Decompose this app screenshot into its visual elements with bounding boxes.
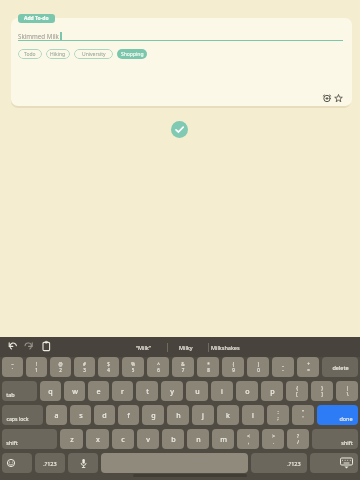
staticText: Shopping xyxy=(121,51,144,58)
staticText: ” ' xyxy=(302,409,304,421)
button[interactable]: ! 1 xyxy=(26,357,47,377)
button[interactable]: ~ ` xyxy=(2,357,23,377)
button[interactable]: : ; xyxy=(267,405,289,425)
button[interactable]: delete xyxy=(322,357,358,377)
button[interactable]: .?123 xyxy=(251,453,307,473)
button[interactable]: % 5 xyxy=(122,357,144,377)
staticText: * 8 xyxy=(207,361,210,373)
button[interactable]: ? / xyxy=(287,429,309,449)
staticText: ~ ` xyxy=(11,361,14,373)
button[interactable]: l xyxy=(242,405,264,425)
button[interactable]: Milky xyxy=(168,337,204,357)
button[interactable]: # 3 xyxy=(74,357,95,377)
button[interactable]: x xyxy=(86,429,109,449)
staticText: Milky xyxy=(179,344,193,351)
button[interactable]: Hiking xyxy=(46,49,70,59)
button[interactable]: Milkshakes xyxy=(206,337,244,357)
button[interactable] xyxy=(310,453,358,473)
button[interactable]: University xyxy=(74,49,113,59)
button[interactable]: Shopping xyxy=(117,49,147,59)
button[interactable] xyxy=(7,340,20,354)
button[interactable]: @ 2 xyxy=(50,357,71,377)
staticText: University xyxy=(82,51,106,58)
button[interactable]: c xyxy=(112,429,134,449)
button[interactable]: o xyxy=(236,381,258,401)
button[interactable]: q xyxy=(40,381,61,401)
staticText: j xyxy=(202,410,204,420)
button[interactable] xyxy=(68,453,98,473)
button[interactable]: < , xyxy=(237,429,259,449)
button[interactable]: b xyxy=(162,429,184,449)
button[interactable]: k xyxy=(217,405,239,425)
button[interactable]: u xyxy=(186,381,208,401)
button[interactable] xyxy=(2,453,32,473)
button[interactable] xyxy=(37,340,50,354)
button[interactable]: tab xyxy=(2,381,37,401)
button[interactable] xyxy=(101,453,248,473)
staticText: Skimmed Milk xyxy=(18,32,59,40)
button[interactable]: v xyxy=(137,429,159,449)
staticText: tab xyxy=(6,391,15,398)
staticText: d xyxy=(102,410,107,420)
button[interactable]: done xyxy=(317,405,358,425)
button[interactable]: p xyxy=(261,381,283,401)
button[interactable]: $ 4 xyxy=(98,357,119,377)
button[interactable]: n xyxy=(187,429,209,449)
button[interactable]: shift xyxy=(312,429,358,449)
button[interactable]: m xyxy=(212,429,234,449)
button[interactable]: i xyxy=(211,381,233,401)
staticText: k xyxy=(226,410,230,420)
button[interactable]: t xyxy=(136,381,158,401)
staticText: .?123 xyxy=(287,460,301,467)
staticText: ) 0 xyxy=(257,361,260,373)
button[interactable] xyxy=(171,121,188,138)
button[interactable]: s xyxy=(70,405,91,425)
staticText: x xyxy=(96,434,100,444)
button[interactable]: ” ' xyxy=(292,405,314,425)
button[interactable]: a xyxy=(46,405,67,425)
button[interactable]: w xyxy=(64,381,85,401)
button[interactable]: r xyxy=(112,381,133,401)
button[interactable] xyxy=(321,91,333,105)
button[interactable] xyxy=(22,340,35,354)
staticText: Milkshakes xyxy=(211,344,240,351)
button[interactable]: g xyxy=(142,405,164,425)
staticText: Add To-do xyxy=(24,15,49,22)
staticText: u xyxy=(195,386,200,396)
button[interactable]: h xyxy=(167,405,189,425)
button[interactable]: f xyxy=(118,405,139,425)
staticText: Todo xyxy=(24,51,36,58)
button[interactable]: * 8 xyxy=(197,357,219,377)
button[interactable]: > . xyxy=(262,429,284,449)
button[interactable]: ) 0 xyxy=(247,357,269,377)
button[interactable]: ^ 6 xyxy=(147,357,169,377)
staticText: f xyxy=(127,410,130,420)
button[interactable]: caps lock xyxy=(2,405,43,425)
button[interactable]: { [ xyxy=(286,381,308,401)
button[interactable] xyxy=(332,91,345,105)
button[interactable]: j xyxy=(192,405,214,425)
button[interactable]: & 7 xyxy=(172,357,194,377)
button[interactable]: | \ xyxy=(336,381,358,401)
button[interactable]: .?123 xyxy=(35,453,65,473)
staticText: < , xyxy=(247,433,250,445)
button[interactable]: } ] xyxy=(311,381,333,401)
staticText: { [ xyxy=(296,385,298,397)
button[interactable]: ( 9 xyxy=(222,357,244,377)
button[interactable]: _ - xyxy=(272,357,294,377)
staticText: z xyxy=(70,434,74,444)
staticText: } ] xyxy=(321,385,323,397)
button[interactable]: + = xyxy=(297,357,319,377)
button[interactable]: Todo xyxy=(18,49,42,59)
staticText: ^ 6 xyxy=(157,361,160,373)
staticText: + = xyxy=(307,361,310,373)
staticText: done xyxy=(339,415,353,422)
staticText: shift xyxy=(6,439,18,446)
button[interactable]: e xyxy=(88,381,109,401)
button[interactable]: d xyxy=(94,405,115,425)
button[interactable]: “Milk” xyxy=(119,337,167,357)
button[interactable]: Add To-do xyxy=(18,14,55,23)
button[interactable]: y xyxy=(161,381,183,401)
button[interactable]: z xyxy=(60,429,83,449)
button[interactable]: shift xyxy=(2,429,57,449)
